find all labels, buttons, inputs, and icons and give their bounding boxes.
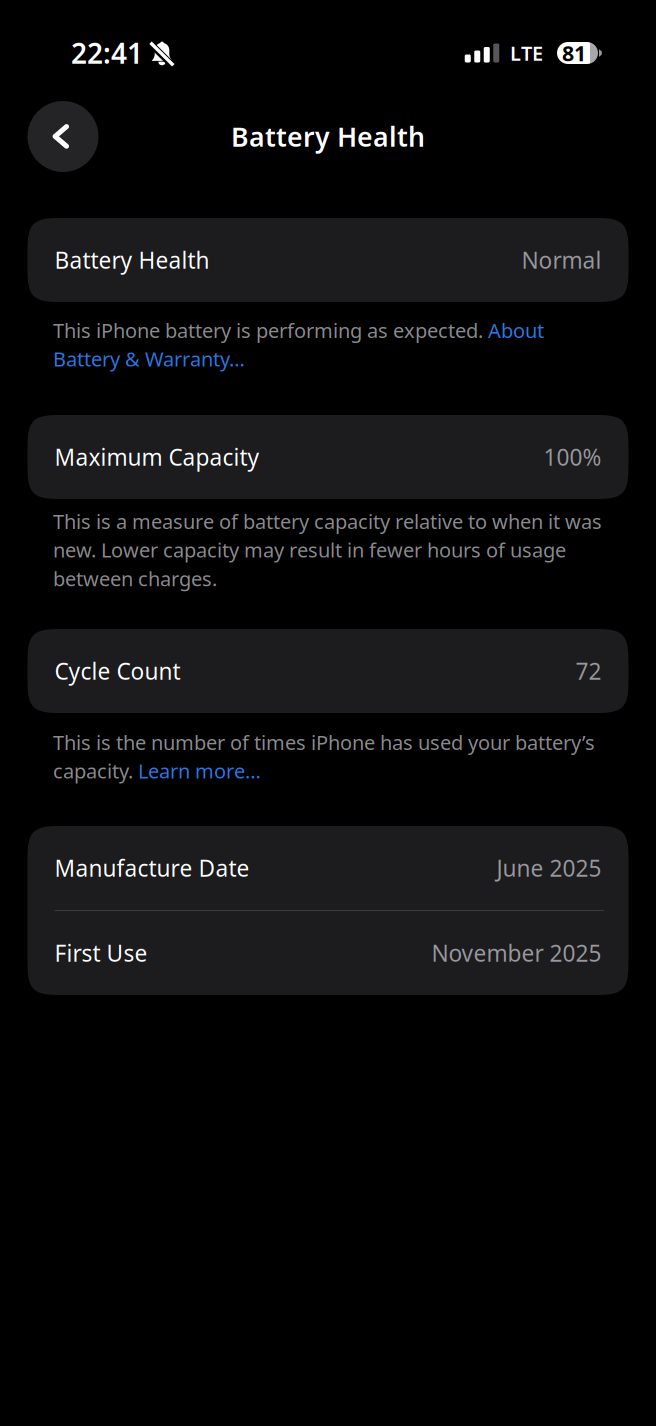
staticText: 81 [562, 39, 586, 67]
staticText: Normal [521, 245, 601, 275]
staticText: Battery Health [231, 119, 425, 154]
staticText: 72 [575, 656, 601, 686]
staticText: 22:41 [71, 34, 143, 72]
button[interactable]: Maximum Capacity [27, 415, 628, 499]
staticText: Manufacture Date [54, 853, 249, 883]
button[interactable]: First Use [27, 911, 628, 995]
staticText: Cycle Count [54, 656, 180, 686]
staticText: This iPhone battery is performing as exp… [53, 317, 544, 372]
staticText: June 2025 [496, 853, 601, 883]
button[interactable]: Back [27, 101, 98, 172]
button[interactable]: Battery Health [27, 218, 628, 302]
staticText: First Use [54, 938, 147, 968]
button[interactable]: Manufacture Date [27, 826, 628, 910]
staticText: November 2025 [431, 938, 601, 968]
staticText: This is the number of times iPhone has u… [53, 729, 595, 784]
staticText: Maximum Capacity [54, 442, 259, 472]
staticText: LTE [510, 40, 543, 66]
staticText: This is a measure of battery capacity re… [53, 508, 602, 592]
button[interactable]: Cycle Count [27, 629, 628, 713]
staticText: 100% [543, 442, 601, 472]
staticText: Battery Health [54, 245, 209, 275]
